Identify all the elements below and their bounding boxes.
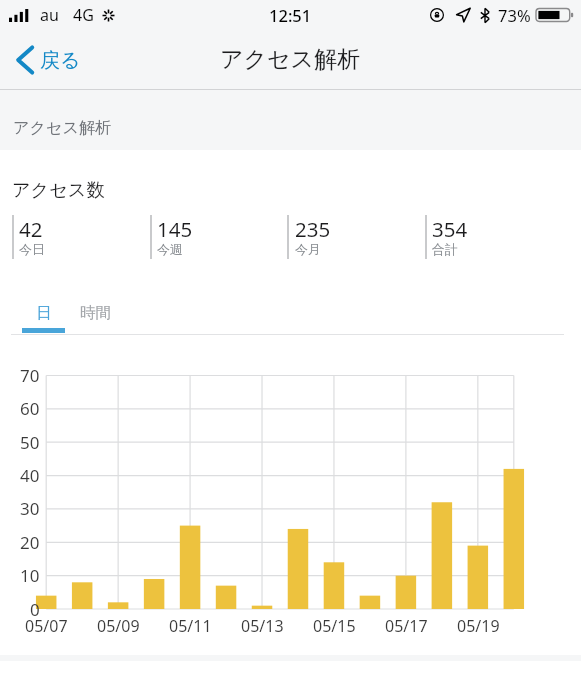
staticText: 354 <box>432 215 468 243</box>
staticText: 60 <box>20 397 40 420</box>
staticText: 4G <box>73 4 94 26</box>
staticText: au <box>40 4 59 26</box>
staticText: 戻る <box>40 48 81 73</box>
staticText: 42 <box>19 215 43 243</box>
staticText: 合計 <box>432 241 458 257</box>
staticText: 30 <box>20 497 40 520</box>
button[interactable]: 戻る <box>0 37 93 83</box>
staticText: 時間 <box>80 303 112 323</box>
staticText: アクセス解析 <box>220 45 361 74</box>
button[interactable]: 日 <box>22 294 65 334</box>
staticText: 日 <box>36 303 52 323</box>
staticText: 70 <box>20 364 40 387</box>
staticText: アクセス数 <box>12 178 105 201</box>
staticText: 20 <box>20 531 40 554</box>
staticText: 今週 <box>157 241 183 257</box>
staticText: 145 <box>157 215 193 243</box>
staticText: 今月 <box>295 241 321 257</box>
other: 戻る <box>16 45 34 75</box>
staticText: 10 <box>20 564 40 587</box>
staticText: 05/11 <box>169 615 212 637</box>
button[interactable]: 時間 <box>71 294 120 334</box>
staticText: 73% <box>498 4 531 26</box>
staticText: アクセス解析 <box>13 117 112 137</box>
staticText: 05/15 <box>313 615 356 637</box>
staticText: 05/13 <box>241 615 284 637</box>
staticText: 05/09 <box>97 615 140 637</box>
staticText: 今日 <box>19 241 45 257</box>
staticText: 235 <box>295 215 331 243</box>
staticText: 12:51 <box>269 4 312 26</box>
staticText: 50 <box>20 431 40 454</box>
staticText: 0 <box>30 598 40 621</box>
staticText: 05/19 <box>457 615 500 637</box>
staticText: 05/07 <box>25 615 68 637</box>
staticText: 05/17 <box>385 615 428 637</box>
staticText: 40 <box>20 464 40 487</box>
